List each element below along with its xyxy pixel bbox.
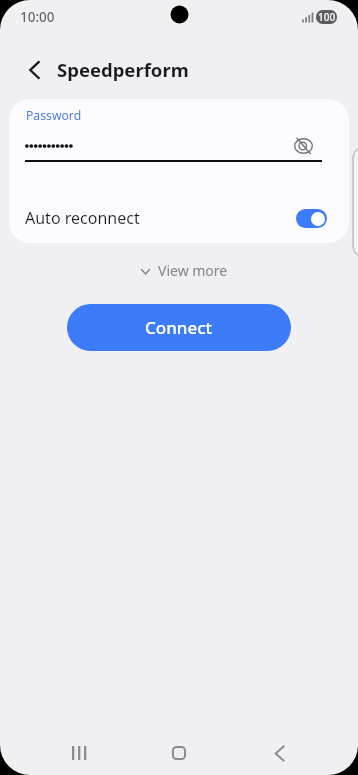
staticText: Auto reconnect bbox=[25, 207, 140, 229]
button[interactable]: Recent apps bbox=[55, 731, 103, 775]
staticText: Connect bbox=[145, 316, 213, 339]
button[interactable]: Back bbox=[17, 52, 53, 88]
staticText: Password bbox=[26, 107, 82, 124]
staticText: 10:00 bbox=[20, 8, 55, 26]
button[interactable]: Home bbox=[155, 731, 203, 775]
button[interactable]: Auto reconnect bbox=[9, 200, 349, 236]
staticText: View more bbox=[158, 261, 228, 280]
button[interactable]: Show password bbox=[289, 132, 317, 160]
button[interactable]: View more bbox=[131, 256, 238, 285]
staticText: 100 bbox=[318, 10, 336, 24]
button[interactable]: Connect bbox=[67, 304, 291, 351]
staticText: Speedperform bbox=[57, 57, 189, 82]
button[interactable]: Back bbox=[255, 731, 303, 775]
